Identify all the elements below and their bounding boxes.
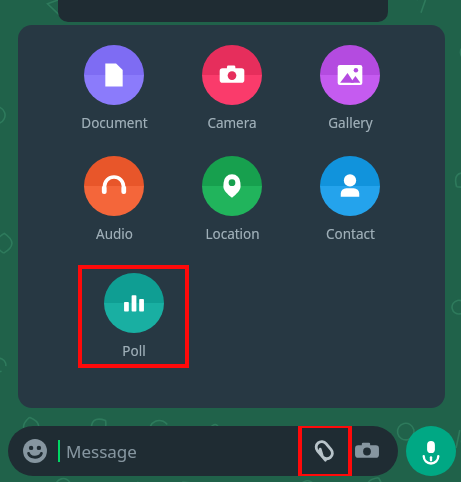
staticText: Gallery xyxy=(328,114,373,132)
staticText: Audio xyxy=(96,225,133,243)
button[interactable]: Document xyxy=(75,45,153,132)
button[interactable]: Camera xyxy=(350,434,384,468)
button[interactable]: Gallery xyxy=(311,45,389,132)
button[interactable]: Emoji xyxy=(20,436,50,466)
staticText: Document xyxy=(81,114,148,132)
staticText: Poll xyxy=(122,342,146,360)
button[interactable]: Camera xyxy=(193,45,271,132)
staticText: Location xyxy=(205,225,260,243)
button[interactable]: Audio xyxy=(75,156,153,243)
staticText: Camera xyxy=(207,114,257,132)
staticText: Contact xyxy=(326,225,375,243)
button[interactable]: Location xyxy=(193,156,271,243)
staticText: Message xyxy=(66,440,137,463)
button[interactable]: Attach xyxy=(300,426,350,476)
button[interactable]: Contact xyxy=(311,156,389,243)
button[interactable]: Voice message xyxy=(406,426,456,476)
button[interactable]: Poll xyxy=(95,273,173,360)
